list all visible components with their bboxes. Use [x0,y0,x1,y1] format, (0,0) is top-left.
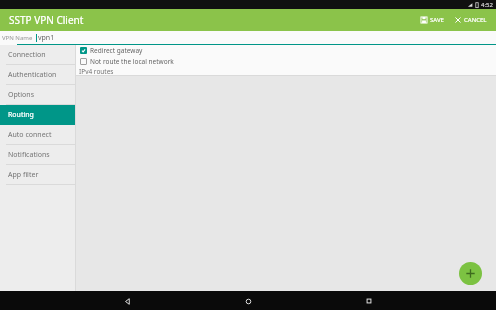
staticText: vpn1 [38,33,55,43]
staticText: Redirect gateway [90,46,143,55]
button[interactable]: Routing [0,105,76,125]
staticText: SSTP VPN Client [9,13,84,27]
button[interactable]: Options [0,85,76,105]
button[interactable]: Home [239,292,257,310]
button[interactable]: Connection [0,45,76,65]
button[interactable]: Recent apps [360,292,378,310]
staticText: Authentication [8,70,57,80]
button[interactable]: Notifications [0,145,76,165]
staticText: Routing [8,110,34,120]
button[interactable]: Redirect gateway [76,45,496,56]
staticText: Notifications [8,150,50,160]
staticText: Options [8,90,35,100]
button[interactable]: Not route the local network [76,56,496,67]
button[interactable]: SAVE [417,14,447,26]
button[interactable]: IPv4 routes [76,67,496,75]
staticText: IPv4 routes [79,67,114,75]
staticText: CANCEL [464,16,487,24]
button[interactable]: Auto connect [0,125,76,145]
button[interactable]: Authentication [0,65,76,85]
staticText: Connection [8,50,46,60]
staticText: Not route the local network [90,57,174,66]
button[interactable]: Back [118,292,136,310]
staticText: SAVE [430,16,444,24]
button[interactable]: Add route [459,262,482,285]
staticText: Auto connect [8,130,52,140]
button[interactable]: CANCEL [451,14,490,26]
staticText: App filter [8,170,39,180]
staticText: 4:52 [481,1,493,9]
staticText: VPN Name [2,34,33,42]
button[interactable]: App filter [0,165,76,185]
